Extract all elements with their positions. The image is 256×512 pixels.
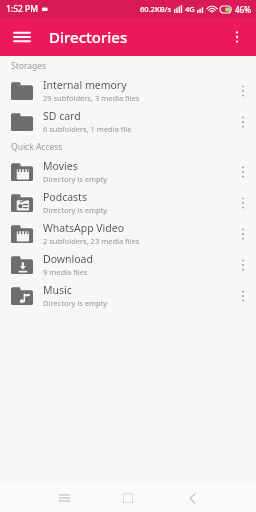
button[interactable]: Recent apps [51,485,77,511]
staticText: Quick Access [11,141,63,153]
staticText: Directory is empty [43,205,108,215]
button[interactable]: Open navigation drawer [6,21,38,53]
staticText: 46% [235,4,251,15]
button[interactable]: More options [221,21,253,53]
button[interactable]: More options for SD card [230,106,256,137]
staticText: Directories [49,27,128,47]
button[interactable]: Music [0,280,256,311]
staticText: 60.2KB/s [140,4,172,14]
button[interactable]: More options for Movies [230,156,256,187]
button[interactable]: Download [0,249,256,280]
button[interactable]: More options for Music [230,280,256,311]
staticText: Storages [11,60,47,72]
button[interactable]: More options for Download [230,249,256,280]
staticText: Music [43,283,72,297]
staticText: Directory is empty [43,174,108,184]
button[interactable]: Internal memory [0,75,256,106]
staticText: Download [43,252,93,266]
button[interactable]: Home [115,485,141,511]
button[interactable]: More options for Podcasts [230,187,256,218]
button[interactable]: More options for WhatsApp Video [230,218,256,249]
button[interactable]: SD card [0,106,256,137]
button[interactable]: More options for Internal memory [230,75,256,106]
staticText: SD card [43,109,81,123]
staticText: Podcasts [43,190,87,204]
button[interactable]: WhatsApp Video [0,218,256,249]
staticText: 4G [185,4,195,14]
staticText: WhatsApp Video [43,221,125,235]
button[interactable]: Podcasts [0,187,256,218]
staticText: 9 media files [43,267,88,277]
staticText: Directory is empty [43,298,108,308]
button[interactable]: Back [179,485,205,511]
staticText: 2 subfolders, 23 media files [43,236,140,246]
staticText: 29 subfolders, 3 media files [43,93,140,103]
staticText: Movies [43,159,78,173]
staticText: Internal memory [43,78,127,92]
button[interactable]: Movies [0,156,256,187]
staticText: 6 subfolders, 1 media file [43,124,132,134]
staticText: 1:52 PM [6,3,39,15]
